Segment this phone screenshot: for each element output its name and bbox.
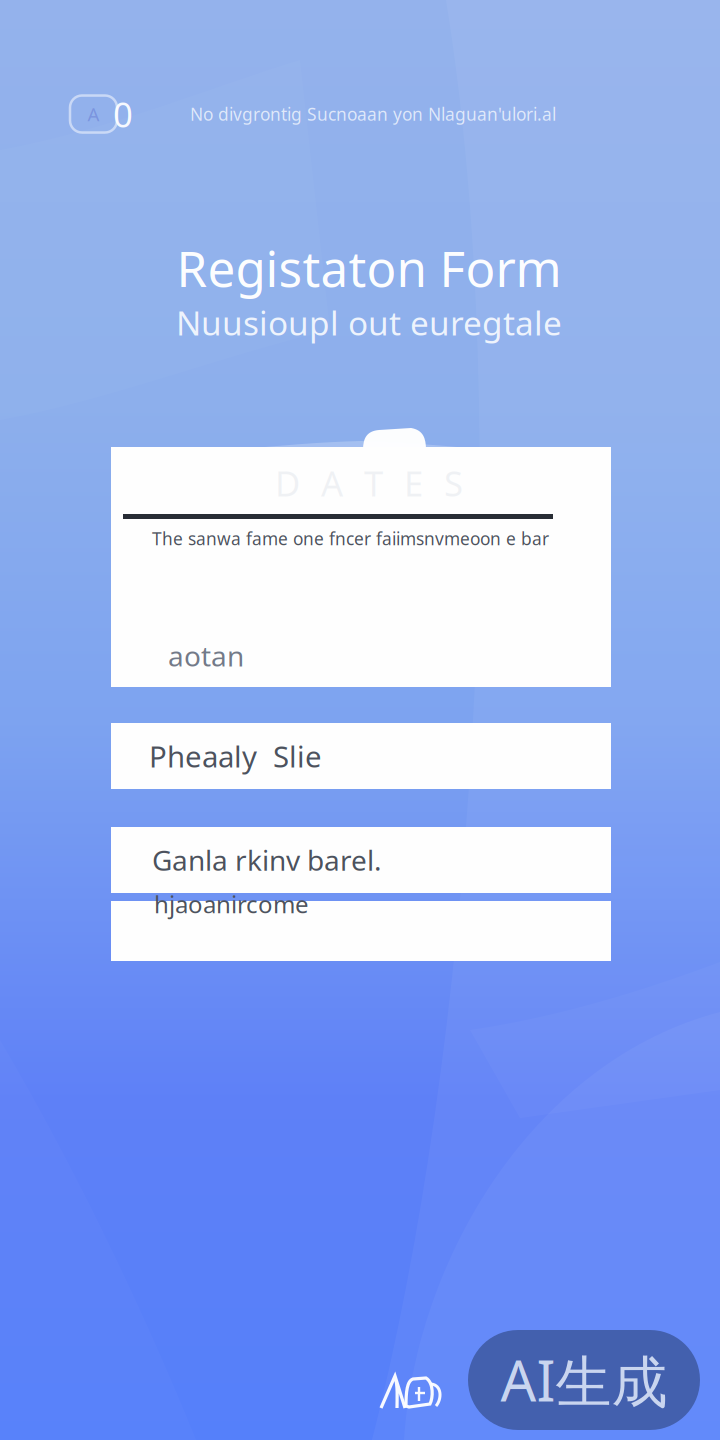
- staticText: Ganla rkinv barel.: [152, 841, 382, 879]
- staticText: No divgrontig Sucnoaan yon Nlaguan'ulori…: [190, 102, 556, 125]
- staticText: Nuusioupl out euregtale: [176, 300, 562, 345]
- staticText: AI生成: [500, 1343, 667, 1417]
- button[interactable]: Dates section: [111, 447, 611, 687]
- button[interactable]: Additional details: [111, 901, 611, 961]
- staticText: D A T E S: [275, 460, 463, 506]
- button[interactable]: Battery: [70, 91, 137, 137]
- staticText: Registaton Form: [176, 235, 561, 300]
- staticText: The sanwa fame one fncer faiimsnvmeoon e…: [152, 527, 549, 550]
- button[interactable]: Phone size: [111, 723, 611, 789]
- staticText: aotan: [168, 637, 244, 674]
- staticText: 0: [113, 91, 133, 137]
- staticText: A: [87, 102, 99, 126]
- button[interactable]: Country name: [111, 827, 611, 893]
- staticText: hjaoanircome: [154, 888, 309, 920]
- staticText: Pheaaly Slie: [149, 736, 322, 775]
